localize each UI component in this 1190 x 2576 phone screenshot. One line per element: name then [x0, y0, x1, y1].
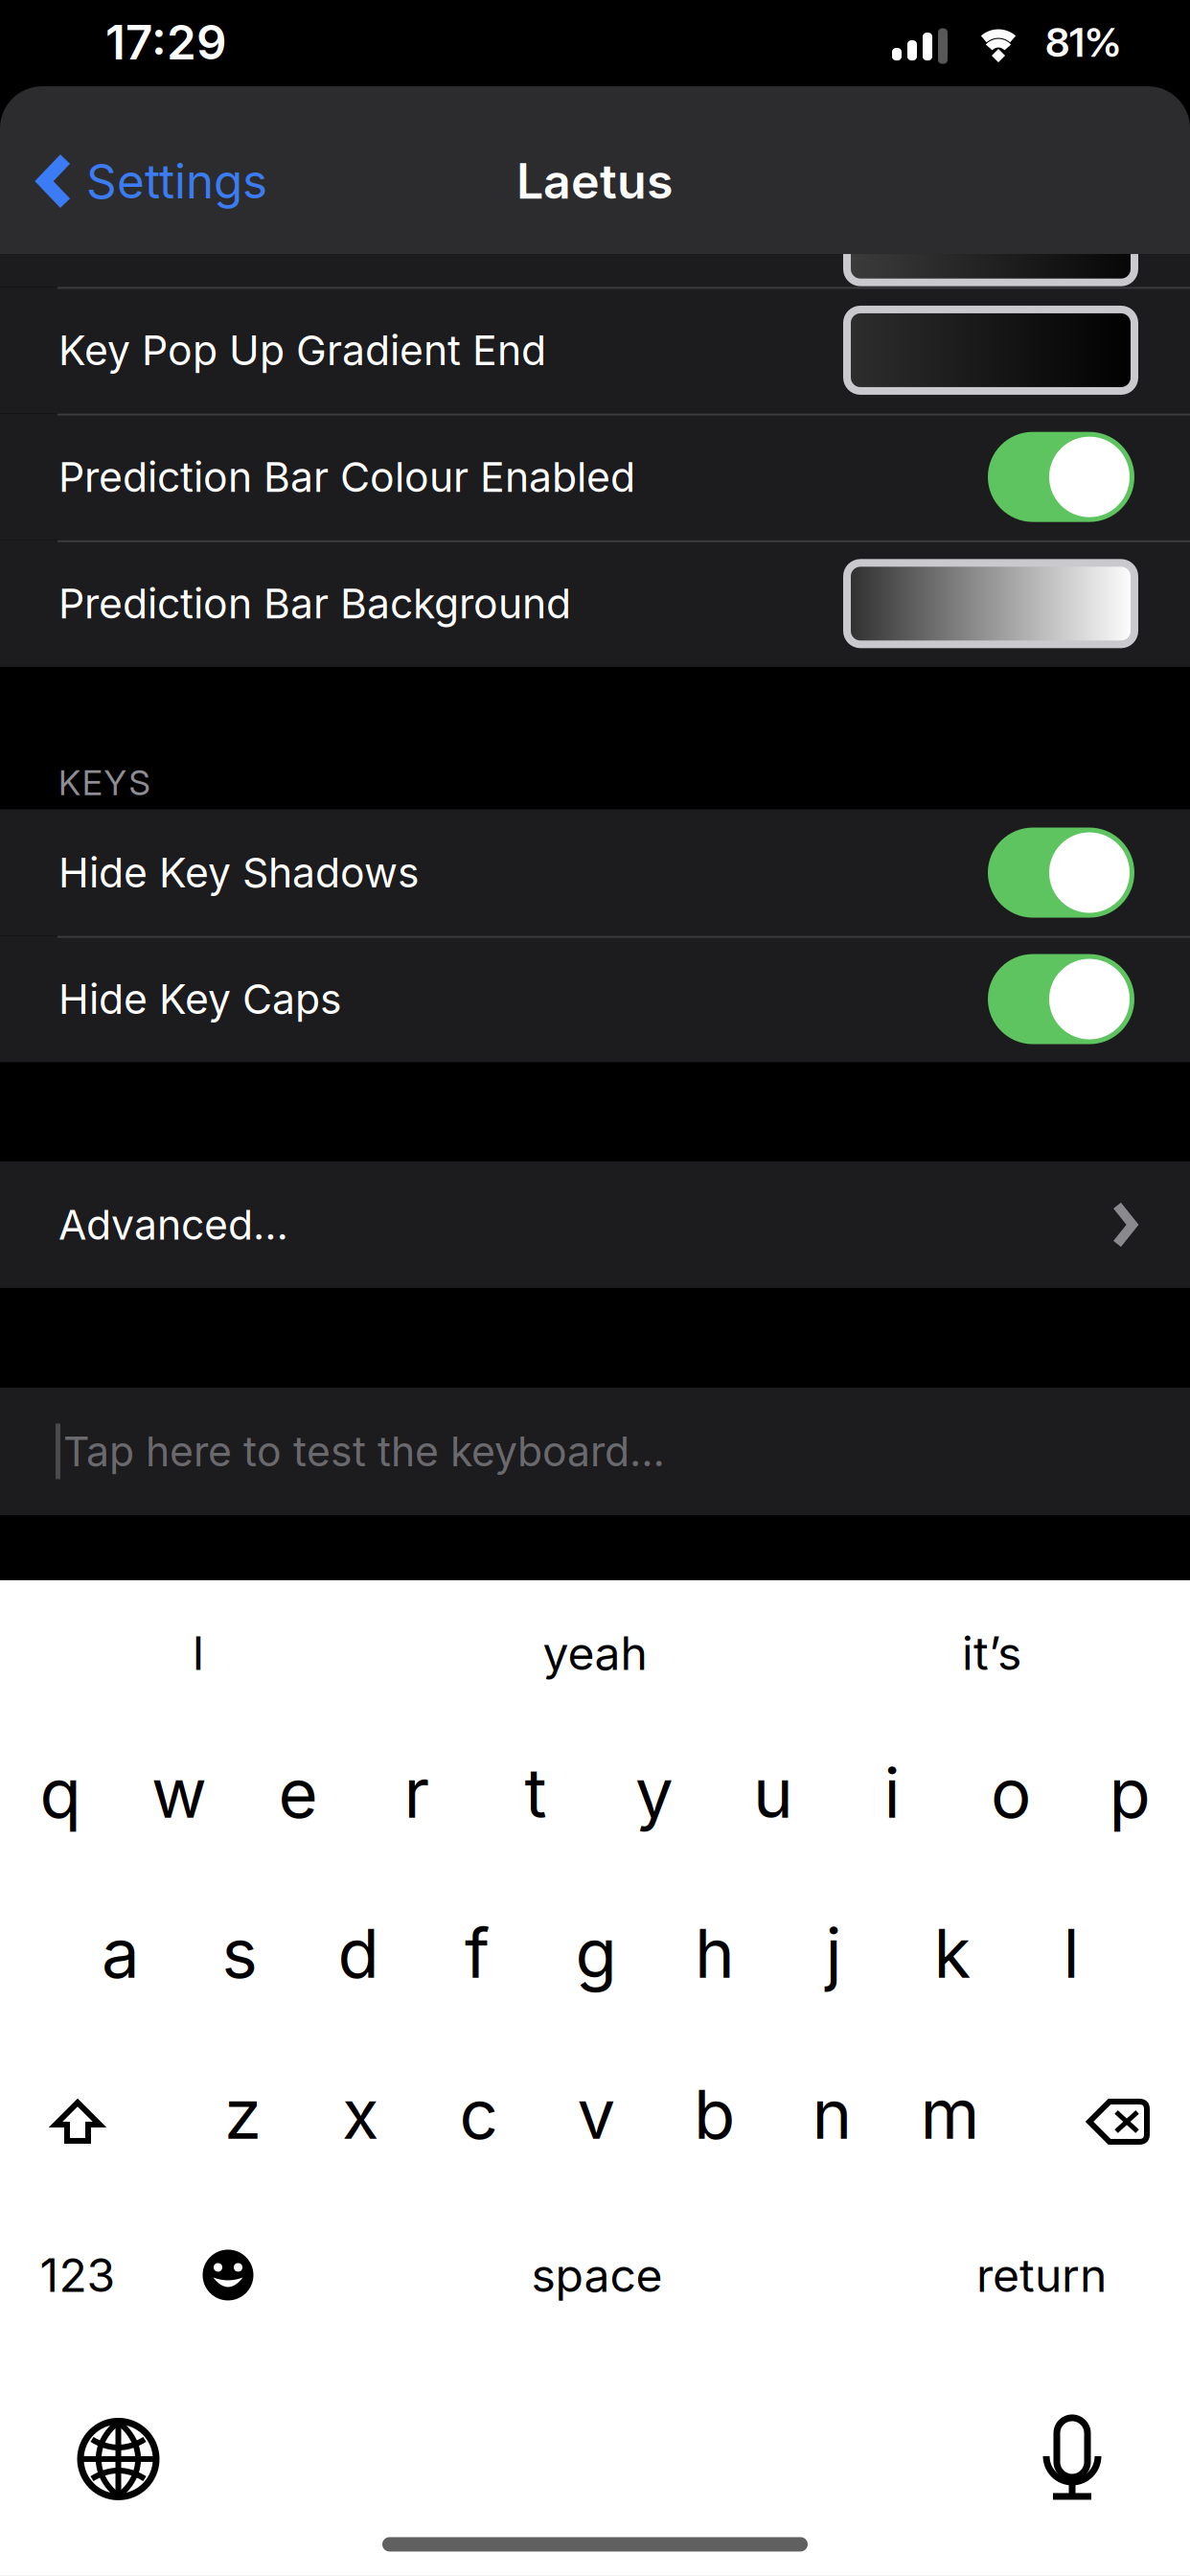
staticText: c	[459, 2073, 498, 2155]
staticText: w	[151, 1752, 207, 1834]
staticText: yeah	[543, 1625, 647, 1681]
staticText: g	[575, 1912, 617, 1994]
button[interactable]: e	[239, 1726, 357, 1860]
staticText: space	[531, 2247, 663, 2303]
button[interactable]: c	[420, 2047, 538, 2181]
button[interactable]: z	[184, 2047, 302, 2181]
staticText: return	[976, 2247, 1107, 2303]
button[interactable]: f	[418, 1886, 537, 2020]
staticText: h	[695, 1912, 735, 1994]
button[interactable]: Emoji	[155, 2208, 301, 2342]
staticText: f	[465, 1912, 490, 1994]
button[interactable]: Tap here to test the keyboard…	[0, 1388, 1190, 1515]
button[interactable]: d	[299, 1886, 418, 2020]
staticText: e	[278, 1752, 318, 1834]
staticText: Settings	[86, 153, 267, 210]
staticText: r	[404, 1752, 430, 1834]
staticText: Prediction Bar Colour Enabled	[58, 452, 635, 502]
button[interactable]: g	[537, 1886, 655, 2020]
button[interactable]: Dictation	[954, 2401, 1190, 2516]
button[interactable]: h	[655, 1886, 774, 2020]
button[interactable]: space	[301, 2208, 893, 2342]
staticText: Advanced…	[58, 1200, 288, 1249]
button[interactable]: i	[833, 1726, 951, 1860]
staticText: Hide Key Shadows	[58, 848, 420, 897]
button[interactable]: v	[538, 2047, 655, 2181]
staticText: q	[40, 1752, 81, 1834]
staticText: Tap here to test the keyboard…	[63, 1427, 665, 1476]
staticText: I	[192, 1625, 205, 1681]
staticText: d	[338, 1912, 379, 1994]
staticText: KEYS	[58, 762, 150, 803]
button[interactable]: y	[595, 1726, 714, 1860]
staticText: p	[1109, 1752, 1150, 1834]
button[interactable]: Hide Key Shadows	[0, 809, 1190, 936]
staticText: i	[884, 1752, 900, 1834]
staticText: 17:29	[105, 14, 227, 71]
button[interactable]: j	[774, 1886, 893, 2020]
button[interactable]: x	[302, 2047, 420, 2181]
staticText: k	[934, 1912, 971, 1994]
button[interactable]: n	[773, 2047, 891, 2181]
button[interactable]: Shift	[0, 2047, 155, 2181]
staticText: v	[577, 2073, 616, 2155]
button[interactable]: Hide Key Caps	[0, 936, 1190, 1062]
staticText: Hide Key Caps	[58, 974, 342, 1024]
button[interactable]: m	[891, 2047, 1009, 2181]
button[interactable]: Next keyboard	[0, 2401, 237, 2516]
button[interactable]: Key Pop Up Gradient End	[0, 287, 1190, 414]
staticText: s	[222, 1912, 257, 1994]
staticText: a	[102, 1912, 140, 1994]
staticText: y	[635, 1752, 674, 1834]
button[interactable]: Prediction Bar Background	[0, 540, 1190, 667]
button[interactable]: o	[951, 1726, 1070, 1860]
button[interactable]: b	[655, 2047, 773, 2181]
staticText: Key Pop Up Gradient End	[58, 325, 546, 375]
button[interactable]: p	[1070, 1726, 1189, 1860]
button[interactable]: a	[61, 1886, 180, 2020]
staticText: m	[920, 2073, 980, 2155]
button[interactable]: r	[357, 1726, 476, 1860]
staticText: t	[525, 1752, 547, 1834]
staticText: u	[753, 1752, 793, 1834]
staticText: l	[1063, 1912, 1079, 1994]
button[interactable]: w	[120, 1726, 239, 1860]
staticText: Prediction Bar Background	[58, 579, 571, 628]
staticText: j	[825, 1912, 842, 1994]
button[interactable]: yeah	[397, 1600, 793, 1706]
staticText: x	[342, 2073, 379, 2155]
staticText: 123	[40, 2247, 115, 2303]
button[interactable]: l	[1012, 1886, 1131, 2020]
button[interactable]: 123	[0, 2208, 155, 2342]
staticText: o	[991, 1752, 1031, 1834]
staticText: n	[812, 2073, 852, 2155]
button[interactable]: s	[180, 1886, 299, 2020]
staticText: Laetus	[516, 152, 674, 210]
button[interactable]: t	[476, 1726, 595, 1860]
button[interactable]: u	[714, 1726, 833, 1860]
staticText: it’s	[962, 1625, 1021, 1681]
button[interactable]: Settings	[0, 122, 294, 241]
button[interactable]: Advanced…	[0, 1161, 1190, 1288]
staticText: 81%	[1045, 18, 1121, 67]
button[interactable]: Delete	[1046, 2047, 1190, 2181]
button[interactable]: it’s	[793, 1600, 1190, 1706]
button[interactable]: Prediction Bar Colour Enabled	[0, 414, 1190, 540]
button[interactable]: I	[0, 1600, 397, 1706]
button[interactable]: return	[893, 2208, 1190, 2342]
button[interactable]: k	[893, 1886, 1012, 2020]
staticText: b	[694, 2073, 735, 2155]
button[interactable]: q	[1, 1726, 120, 1860]
staticText: z	[224, 2073, 262, 2155]
